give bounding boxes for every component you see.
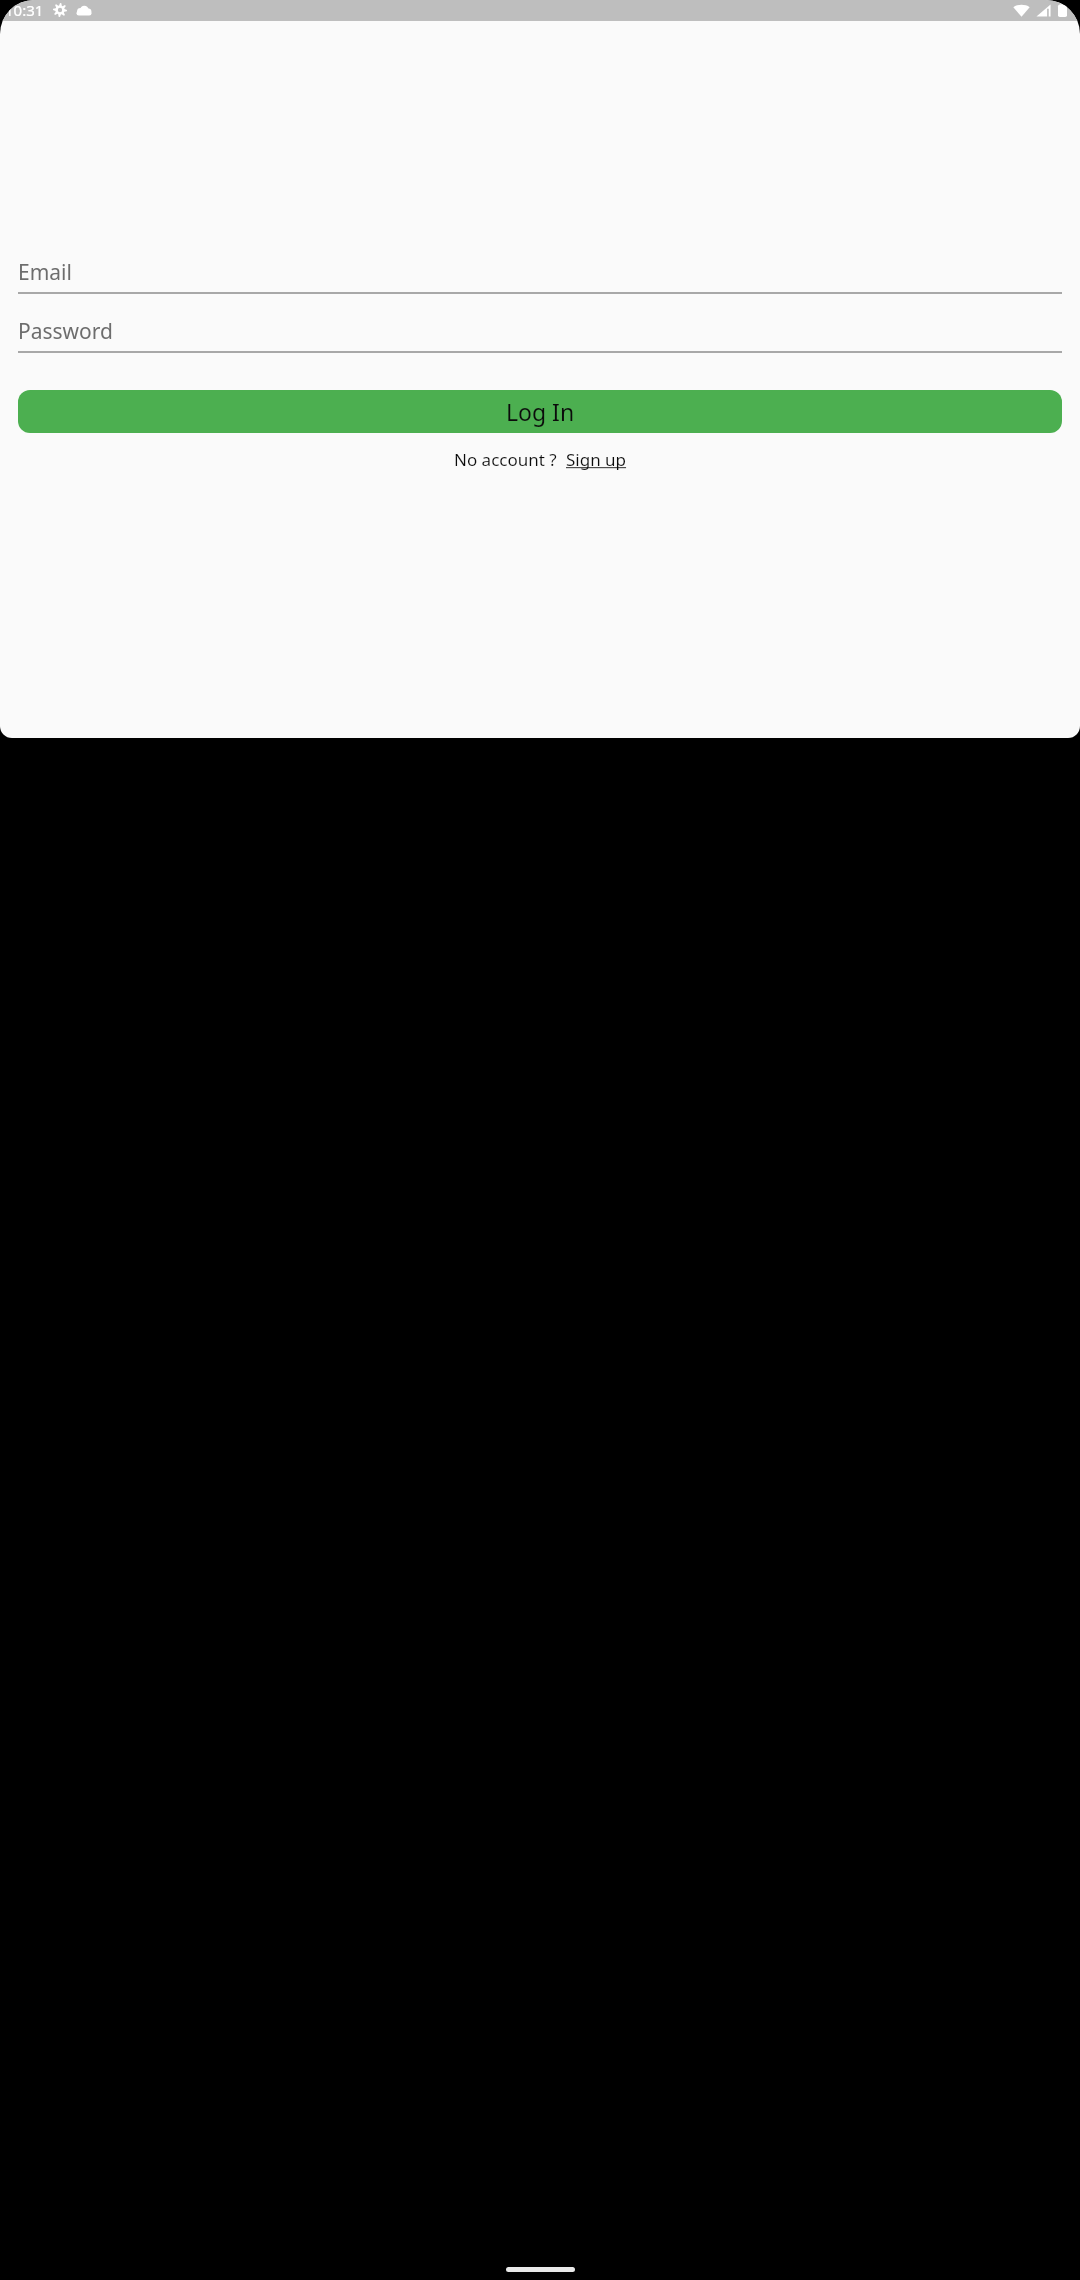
other: Cloud sync — [76, 5, 92, 16]
button[interactable]: Log In — [18, 390, 1062, 433]
button[interactable]: Sign up — [566, 448, 627, 471]
staticText: Password — [18, 317, 113, 346]
other: Wi-Fi — [1013, 4, 1030, 17]
button[interactable]: Email — [18, 258, 1062, 294]
other: Battery — [1058, 3, 1067, 17]
staticText: Log In — [506, 396, 575, 427]
staticText: Email — [18, 258, 72, 287]
button[interactable]: Password — [18, 317, 1062, 353]
staticText: No account ? — [454, 448, 557, 471]
other: Settings — [53, 3, 67, 17]
staticText: 10:31 — [5, 0, 44, 20]
other: Mobile signal — [1036, 4, 1051, 17]
staticText: Sign up — [566, 448, 627, 471]
